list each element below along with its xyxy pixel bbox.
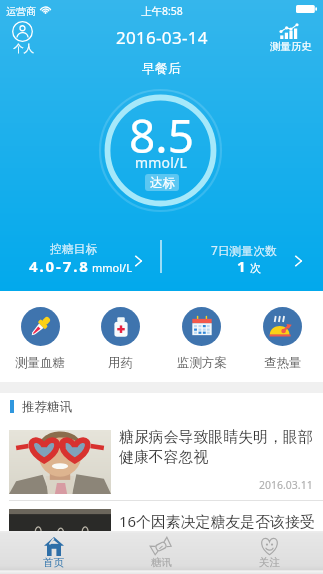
button[interactable]: 控糖目标 bbox=[0, 229, 161, 287]
button[interactable]: 测量历史 bbox=[262, 17, 320, 59]
button[interactable]: 用药 bbox=[80, 291, 161, 382]
staticText: 监测方案 bbox=[177, 355, 227, 371]
staticText: mmol/L bbox=[135, 153, 188, 172]
button[interactable]: 关注 bbox=[215, 531, 323, 574]
staticText: 2016.03.11 bbox=[259, 478, 313, 492]
staticText: 测量血糖 bbox=[15, 355, 65, 371]
staticText: 测量历史 bbox=[270, 40, 312, 53]
button[interactable]: 7日测量次数 bbox=[161, 229, 323, 287]
staticText: 糖尿病会导致眼睛失明，眼部健康不容忽视 bbox=[119, 428, 315, 466]
button[interactable]: 监测方案 bbox=[161, 291, 242, 382]
staticText: 7日测量次数 bbox=[211, 242, 277, 258]
staticText: 首页 bbox=[43, 556, 64, 569]
button[interactable]: 糖尿病会导致眼睛失明，眼部健康不容忽视 bbox=[0, 420, 323, 501]
staticText: 8.5 bbox=[129, 104, 194, 167]
staticText: 推荐糖讯 bbox=[22, 399, 72, 415]
button[interactable]: 达标 bbox=[145, 174, 179, 191]
staticText: mmol/L bbox=[92, 260, 132, 275]
button[interactable]: 推荐糖讯 bbox=[0, 393, 323, 420]
button[interactable]: 测量血糖 bbox=[0, 291, 80, 382]
staticText: 查热量 bbox=[264, 355, 302, 371]
staticText: 达标 bbox=[150, 175, 175, 191]
staticText: 次 bbox=[250, 261, 261, 275]
staticText: 运营商 bbox=[6, 5, 36, 18]
button[interactable]: 查热量 bbox=[242, 291, 323, 382]
button[interactable]: 16个因素决定糖友是否该接受 bbox=[0, 501, 323, 574]
staticText: 上午8:58 bbox=[141, 4, 183, 18]
button[interactable]: 糖讯 bbox=[107, 531, 215, 574]
staticText: 关注 bbox=[259, 556, 280, 569]
staticText: 2016-03-14 bbox=[116, 26, 208, 49]
staticText: 早餐后 bbox=[142, 60, 181, 76]
staticText: 16个因素决定糖友是否该接受 bbox=[119, 511, 315, 531]
staticText: 4.0-7.8 bbox=[29, 256, 90, 276]
staticText: 控糖目标 bbox=[50, 242, 98, 257]
staticText: 1 bbox=[237, 256, 248, 276]
staticText: 用药 bbox=[108, 355, 133, 371]
staticText: 个人 bbox=[13, 42, 34, 55]
button[interactable]: 首页 bbox=[0, 531, 107, 574]
button[interactable]: 个人 bbox=[4, 17, 42, 59]
staticText: 糖讯 bbox=[151, 556, 172, 569]
